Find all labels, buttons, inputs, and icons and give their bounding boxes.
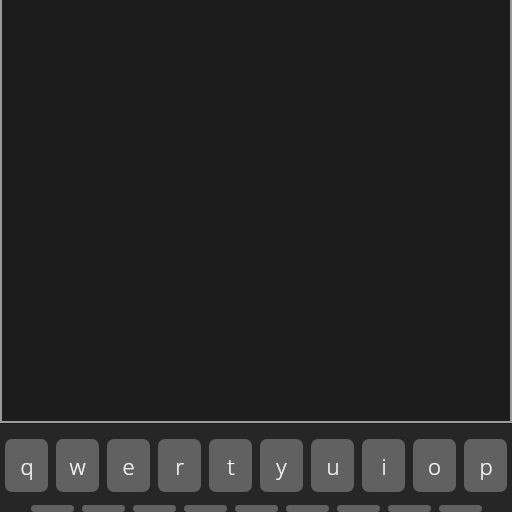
button[interactable]: h bbox=[286, 505, 329, 512]
staticText: y bbox=[276, 451, 287, 481]
button[interactable]: t bbox=[209, 439, 252, 492]
button[interactable]: o bbox=[413, 439, 456, 492]
staticText: r bbox=[175, 451, 184, 481]
button[interactable]: q bbox=[5, 439, 48, 492]
staticText: t bbox=[227, 451, 235, 481]
staticText: e bbox=[122, 451, 135, 481]
button[interactable]: a bbox=[31, 505, 74, 512]
button[interactable]: e bbox=[107, 439, 150, 492]
staticText: i bbox=[381, 451, 387, 481]
button[interactable]: i bbox=[362, 439, 405, 492]
button[interactable]: u bbox=[311, 439, 354, 492]
staticText: p bbox=[479, 451, 493, 481]
button[interactable]: f bbox=[184, 505, 227, 512]
staticText: u bbox=[326, 451, 340, 481]
button[interactable]: d bbox=[133, 505, 176, 512]
button[interactable]: p bbox=[464, 439, 507, 492]
staticText: o bbox=[428, 451, 441, 481]
staticText: q bbox=[20, 451, 34, 481]
button[interactable]: k bbox=[388, 505, 431, 512]
button[interactable]: w bbox=[56, 439, 99, 492]
button[interactable]: r bbox=[158, 439, 201, 492]
button[interactable]: l bbox=[439, 505, 482, 512]
button[interactable]: g bbox=[235, 505, 278, 512]
button[interactable]: j bbox=[337, 505, 380, 512]
button[interactable]: s bbox=[82, 505, 125, 512]
button[interactable] bbox=[0, 0, 512, 424]
button[interactable]: y bbox=[260, 439, 303, 492]
staticText: w bbox=[69, 451, 86, 481]
